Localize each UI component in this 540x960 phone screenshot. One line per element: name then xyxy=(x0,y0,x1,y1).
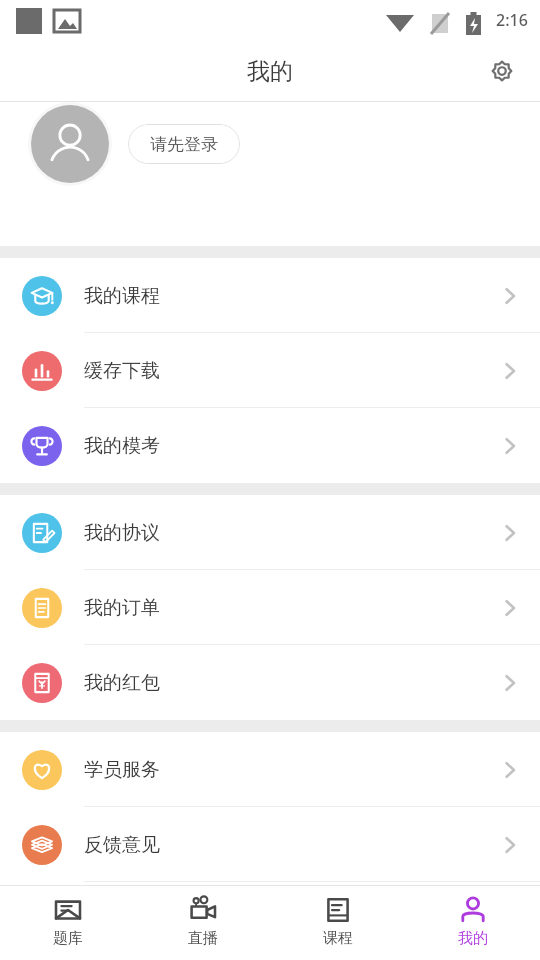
staticText: 我的 xyxy=(247,57,293,86)
button[interactable]: 学员服务 xyxy=(0,732,540,807)
button[interactable]: 反馈意见 xyxy=(0,807,540,882)
button[interactable]: 我的订单 xyxy=(0,570,540,645)
staticText: 请先登录 xyxy=(150,134,218,155)
staticText: 我的课程 xyxy=(84,284,160,308)
staticText: 我的协议 xyxy=(84,521,160,545)
button[interactable]: 缓存下载 xyxy=(0,333,540,408)
staticText: 课程 xyxy=(323,929,353,948)
staticText: 我的红包 xyxy=(84,671,160,695)
button[interactable]: 课程 xyxy=(270,886,405,948)
button[interactable]: 直播 xyxy=(135,886,270,948)
staticText: 反馈意见 xyxy=(84,833,160,857)
staticText: 学员服务 xyxy=(84,758,160,782)
staticText: 缓存下载 xyxy=(84,359,160,383)
staticText: 2:16 xyxy=(496,9,528,31)
staticText: 我的 xyxy=(458,929,488,948)
staticText: 我的模考 xyxy=(84,434,160,458)
button[interactable]: Avatar xyxy=(31,105,109,183)
button[interactable]: 我的协议 xyxy=(0,495,540,570)
button[interactable]: 我的模考 xyxy=(0,408,540,483)
button[interactable]: 题库 xyxy=(0,886,135,948)
button[interactable]: 我的 xyxy=(405,886,540,948)
button[interactable]: Settings xyxy=(478,47,526,95)
button[interactable]: 请先登录 xyxy=(128,124,240,164)
staticText: 直播 xyxy=(188,929,218,948)
staticText: 我的订单 xyxy=(84,596,160,620)
button[interactable]: 我的课程 xyxy=(0,258,540,333)
button[interactable]: 我的红包 xyxy=(0,645,540,720)
staticText: 题库 xyxy=(53,929,83,948)
